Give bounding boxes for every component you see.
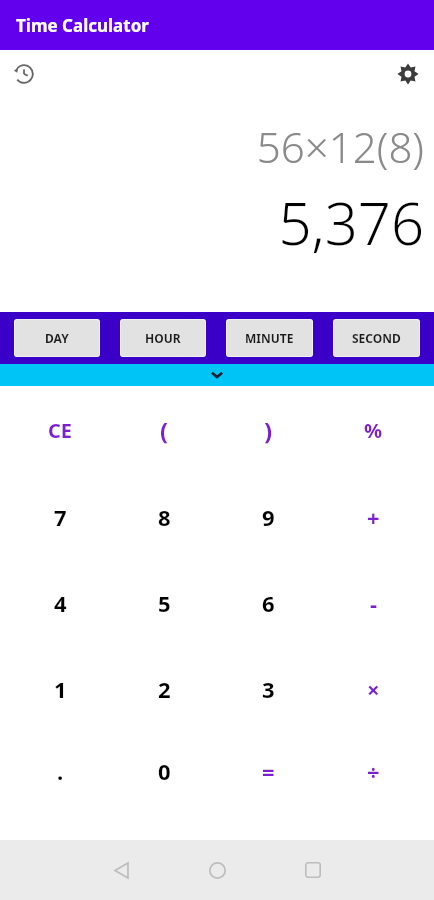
staticText: CE <box>48 417 73 444</box>
button[interactable]: CE <box>8 386 112 473</box>
button[interactable]: 4 <box>8 560 112 646</box>
staticText: = <box>262 756 275 786</box>
button[interactable]: Recent apps <box>265 846 361 894</box>
button[interactable]: HOUR <box>120 319 206 357</box>
button[interactable]: SECOND <box>333 319 420 357</box>
button[interactable]: 1 <box>8 646 112 732</box>
staticText: SECOND <box>352 330 401 346</box>
button[interactable]: 3 <box>216 646 321 732</box>
button[interactable]: 8 <box>112 473 216 560</box>
button[interactable]: = <box>216 732 321 840</box>
staticText: 4 <box>54 588 67 618</box>
button[interactable]: × <box>321 646 426 732</box>
button[interactable]: MINUTE <box>226 319 313 357</box>
staticText: 2 <box>158 674 171 704</box>
button[interactable]: Back <box>73 846 169 894</box>
staticText: ) <box>264 414 273 447</box>
staticText: 5 <box>158 588 171 618</box>
button[interactable]: Settings <box>390 56 426 92</box>
button[interactable]: 0 <box>112 732 216 840</box>
button[interactable]: 2 <box>112 646 216 732</box>
button[interactable]: DAY <box>14 319 100 357</box>
staticText: 9 <box>262 502 275 532</box>
staticText: × <box>367 674 380 704</box>
button[interactable]: ÷ <box>321 732 426 840</box>
staticText: . <box>57 756 64 786</box>
staticText: ( <box>160 414 169 447</box>
staticText: 1 <box>54 674 67 704</box>
staticText: 56×12(8) <box>256 118 424 175</box>
button[interactable]: 5 <box>112 560 216 646</box>
button[interactable]: 7 <box>8 473 112 560</box>
button[interactable]: 9 <box>216 473 321 560</box>
button[interactable]: 6 <box>216 560 321 646</box>
button[interactable]: ( <box>112 386 216 473</box>
staticText: 5,376 <box>278 183 424 262</box>
staticText: DAY <box>45 330 69 346</box>
staticText: 8 <box>158 502 171 532</box>
staticText: 6 <box>262 588 275 618</box>
staticText: - <box>370 588 378 618</box>
staticText: 3 <box>262 674 275 704</box>
staticText: ÷ <box>367 756 380 786</box>
staticText: 7 <box>54 502 67 532</box>
staticText: Time Calculator <box>16 14 149 37</box>
staticText: HOUR <box>145 330 181 346</box>
button[interactable]: Home <box>169 846 265 894</box>
button[interactable]: . <box>8 732 112 840</box>
staticText: % <box>364 417 383 444</box>
button[interactable]: ) <box>216 386 321 473</box>
button[interactable]: Expand <box>0 364 434 386</box>
staticText: MINUTE <box>245 330 294 346</box>
button[interactable]: + <box>321 473 426 560</box>
staticText: + <box>367 502 380 532</box>
button[interactable]: % <box>321 386 426 473</box>
button[interactable]: - <box>321 560 426 646</box>
button[interactable]: History <box>6 56 42 92</box>
staticText: 0 <box>158 756 171 786</box>
